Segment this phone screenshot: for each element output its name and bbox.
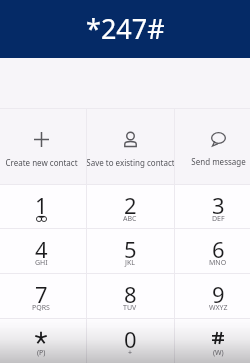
staticText: TUV	[123, 303, 137, 313]
button[interactable]: 2	[86, 185, 174, 228]
staticText: ABC	[123, 214, 137, 224]
staticText: PQRS	[32, 303, 50, 313]
staticText: *247#	[86, 10, 165, 47]
staticText: JKL	[125, 258, 135, 268]
staticText: +	[128, 348, 133, 358]
button[interactable]: 0	[86, 319, 174, 363]
staticText: Save to existing contact	[86, 157, 175, 168]
staticText: 1	[35, 190, 48, 220]
button[interactable]: 9	[174, 274, 250, 318]
staticText: Create new contact	[5, 157, 78, 168]
staticText: 6	[212, 234, 225, 264]
other: Create new contact	[34, 132, 49, 147]
button[interactable]: (P)	[0, 319, 85, 363]
staticText: 7	[35, 279, 48, 309]
staticText: Send message	[191, 156, 246, 167]
button[interactable]: 7	[0, 274, 85, 318]
button[interactable]: 4	[0, 229, 85, 273]
other: Save to existing contact	[124, 132, 137, 147]
staticText: 4	[35, 234, 48, 264]
staticText: 5	[124, 234, 137, 264]
button[interactable]: 5	[86, 229, 174, 273]
staticText: 2	[124, 190, 137, 220]
staticText: 0	[124, 324, 137, 354]
button[interactable]: 3	[174, 185, 250, 228]
staticText: 9	[212, 279, 225, 309]
staticText: GHI	[35, 258, 48, 268]
button[interactable]: 8	[86, 274, 174, 318]
button[interactable]: (W)	[174, 319, 250, 363]
button[interactable]: 1	[0, 185, 85, 228]
button[interactable]: Save to existing contact	[86, 109, 174, 184]
other: Send message	[211, 132, 226, 146]
staticText: 3	[212, 190, 225, 220]
button[interactable]: Create new contact	[0, 109, 85, 184]
staticText: (W)	[213, 348, 224, 358]
staticText: MNO	[209, 258, 227, 268]
staticText: WXYZ	[209, 303, 228, 313]
button[interactable]: 6	[174, 229, 250, 273]
button[interactable]: Send message	[174, 109, 250, 184]
staticText: DEF	[212, 214, 225, 224]
staticText: (P)	[37, 348, 46, 358]
staticText: 8	[124, 279, 137, 309]
